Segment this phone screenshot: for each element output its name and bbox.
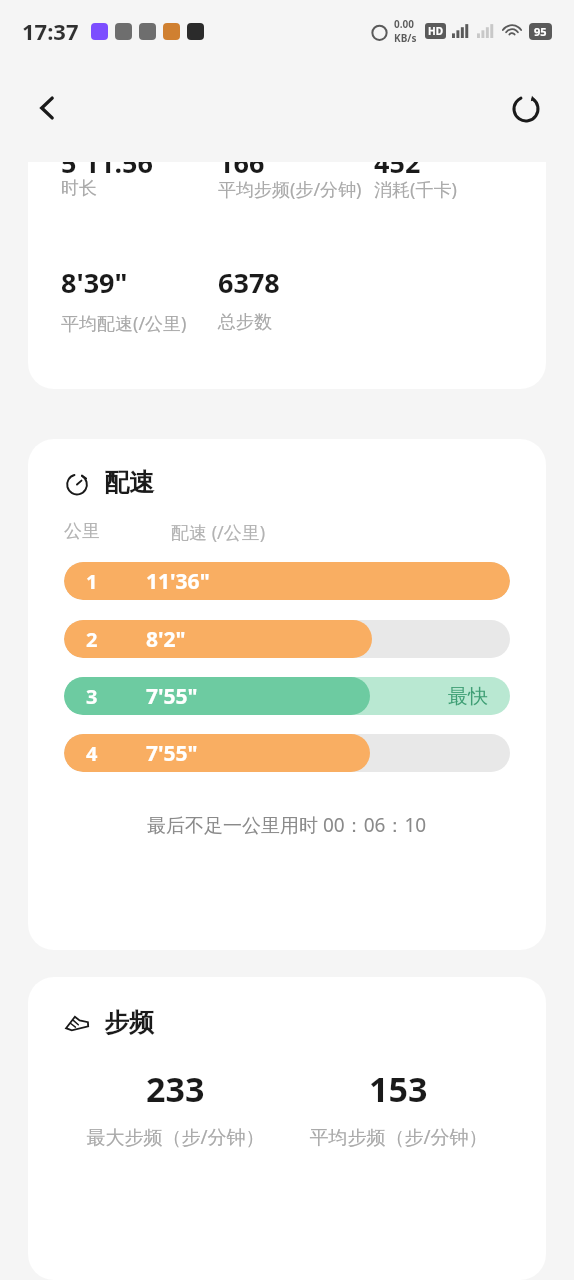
staticText: 平均步频（步/分钟） (293, 1124, 504, 1150)
staticText: 步频 (104, 1007, 154, 1038)
button[interactable]: Back (22, 82, 74, 134)
staticText: 平均步频(步/分钟) (218, 177, 368, 202)
staticText: 7'55" (146, 682, 198, 711)
staticText: 153 (369, 1066, 428, 1112)
staticText: 总步数 (218, 311, 368, 334)
staticText: 5'11.56 (61, 162, 218, 181)
staticText: 消耗(千卡) (374, 177, 524, 202)
staticText: 最大步频（步/分钟） (70, 1124, 281, 1150)
staticText: 8'39" (61, 264, 218, 301)
staticText: 时长 (61, 177, 212, 200)
staticText: 最快 (448, 684, 488, 709)
staticText: 1 (86, 568, 146, 595)
staticText: 17:37 (22, 16, 79, 46)
button[interactable]: 3 (64, 677, 510, 715)
button[interactable]: 4 (64, 734, 510, 772)
staticText: 公里 (64, 520, 171, 543)
staticText: 166 (218, 162, 374, 181)
staticText: HD (428, 24, 443, 38)
staticText: 配速 (104, 467, 154, 498)
staticText: 2 (86, 626, 146, 653)
button[interactable]: 1 (64, 562, 510, 600)
staticText: 233 (146, 1066, 205, 1112)
button[interactable]: 2 (64, 620, 510, 658)
staticText: 6378 (218, 264, 374, 301)
staticText: 95 (534, 24, 547, 39)
staticText: 11'36" (146, 567, 210, 596)
staticText: 7'55" (146, 739, 198, 768)
staticText: 最后不足一公里用时 00：06：10 (147, 812, 427, 838)
staticText: 452 (374, 162, 530, 181)
staticText: 配速 (/公里) (171, 520, 266, 545)
staticText: KB/s (394, 31, 417, 45)
staticText: 0.00 (394, 17, 414, 31)
staticText: 8'2" (146, 625, 186, 654)
staticText: 4 (86, 740, 146, 767)
button[interactable]: Refresh (500, 82, 552, 134)
staticText: 平均配速(/公里) (61, 311, 212, 336)
staticText: 3 (86, 683, 146, 710)
